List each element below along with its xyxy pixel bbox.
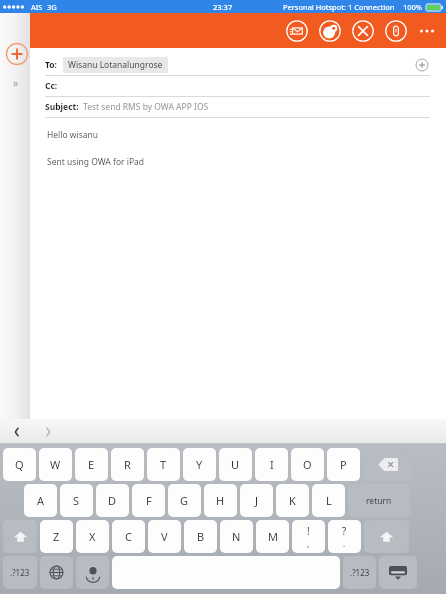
button[interactable]: Discard xyxy=(352,20,374,42)
staticText: D xyxy=(108,493,117,508)
staticText: F xyxy=(146,493,152,508)
button[interactable]: M xyxy=(256,520,289,553)
staticText: L xyxy=(326,493,332,508)
staticText: 3G xyxy=(47,2,57,12)
button[interactable]: G xyxy=(168,484,201,517)
staticText: P xyxy=(340,457,347,472)
staticText: E xyxy=(88,457,95,472)
staticText: Y xyxy=(196,457,203,472)
button[interactable]: A xyxy=(24,484,57,517)
button[interactable]: Q xyxy=(3,448,36,481)
button[interactable]: W xyxy=(39,448,72,481)
staticText: Personal Hotspot: 1 Connection xyxy=(283,2,395,12)
staticText: W xyxy=(50,457,61,472)
button[interactable]: I xyxy=(255,448,288,481)
staticText: ! xyxy=(307,524,310,538)
button[interactable]: T xyxy=(147,448,180,481)
staticText: I xyxy=(270,457,274,472)
staticText: Hello wisanu xyxy=(47,129,99,141)
button[interactable]: C xyxy=(112,520,145,553)
button[interactable]: New message xyxy=(5,42,29,66)
staticText: K xyxy=(289,493,296,508)
button[interactable]: O xyxy=(291,448,324,481)
staticText: . xyxy=(343,538,346,549)
button[interactable]: Permissions xyxy=(319,20,341,42)
staticText: M xyxy=(268,529,278,544)
staticText: Subject: xyxy=(45,101,79,113)
staticText: Z xyxy=(53,529,60,544)
staticText: 23:37 xyxy=(213,2,233,12)
staticText: O xyxy=(303,457,312,472)
button[interactable]: Send xyxy=(286,20,308,42)
staticText: return xyxy=(366,495,392,507)
staticText: .?123 xyxy=(10,567,30,578)
staticText: .?123 xyxy=(350,567,370,578)
button[interactable]: Space xyxy=(112,556,340,589)
staticText: Test send RMS by OWA APP IOS xyxy=(83,101,209,113)
staticText: S xyxy=(73,493,80,508)
button[interactable]: Hide keyboard xyxy=(379,556,417,589)
button[interactable]: More options xyxy=(416,19,438,43)
button[interactable]: V xyxy=(148,520,181,553)
staticText: C xyxy=(125,529,132,544)
button[interactable]: B xyxy=(184,520,217,553)
button[interactable]: ! xyxy=(292,520,325,553)
button[interactable]: ? xyxy=(328,520,361,553)
button[interactable]: J xyxy=(240,484,273,517)
button[interactable]: R xyxy=(111,448,144,481)
staticText: 100% xyxy=(403,2,423,12)
button[interactable]: P xyxy=(327,448,360,481)
button[interactable]: Previous field xyxy=(6,421,28,443)
button[interactable]: Expand navigation xyxy=(8,75,24,91)
button[interactable]: .?123 xyxy=(3,556,37,589)
staticText: Q xyxy=(15,457,24,472)
button[interactable]: X xyxy=(76,520,109,553)
button[interactable]: Z xyxy=(40,520,73,553)
button[interactable]: K xyxy=(276,484,309,517)
button[interactable]: U xyxy=(219,448,252,481)
button[interactable]: F xyxy=(132,484,165,517)
staticText: U xyxy=(231,457,240,472)
button[interactable]: return xyxy=(348,484,410,517)
staticText: R xyxy=(124,457,131,472)
button[interactable]: N xyxy=(220,520,253,553)
button[interactable]: Backspace xyxy=(363,448,412,481)
staticText: G xyxy=(180,493,189,508)
staticText: » xyxy=(13,76,19,90)
staticText: N xyxy=(232,529,241,544)
staticText: AIS xyxy=(31,2,43,12)
button[interactable]: Add recipient xyxy=(414,57,430,73)
button[interactable]: Subject: xyxy=(30,97,446,117)
button[interactable]: Y xyxy=(183,448,216,481)
staticText: X xyxy=(89,529,96,544)
staticText: ? xyxy=(342,524,347,538)
button[interactable]: To: xyxy=(30,55,446,75)
button[interactable]: Shift xyxy=(3,520,37,553)
staticText: T xyxy=(160,457,167,472)
button[interactable]: Change keyboard xyxy=(40,556,73,589)
button[interactable]: Hello wisanu xyxy=(30,129,446,168)
staticText: , xyxy=(307,538,310,549)
staticText: H xyxy=(216,493,225,508)
staticText: Wisanu Lotanalungrose xyxy=(68,59,163,71)
staticText: Cc: xyxy=(45,80,58,92)
button[interactable]: .?123 xyxy=(343,556,376,589)
staticText: J xyxy=(255,493,259,508)
button[interactable]: Dictation xyxy=(76,556,109,589)
staticText: To: xyxy=(45,59,58,71)
button[interactable]: Attach xyxy=(385,20,407,42)
staticText: A xyxy=(37,493,45,508)
button[interactable]: L xyxy=(312,484,345,517)
staticText: V xyxy=(161,529,168,544)
staticText: Sent using OWA for iPad xyxy=(47,156,145,168)
button[interactable]: Shift xyxy=(364,520,409,553)
button[interactable]: S xyxy=(60,484,93,517)
button[interactable]: H xyxy=(204,484,237,517)
button[interactable]: E xyxy=(75,448,108,481)
button[interactable]: Cc: xyxy=(30,76,446,96)
staticText: B xyxy=(197,529,205,544)
button[interactable]: Next field xyxy=(37,421,59,443)
button[interactable]: D xyxy=(96,484,129,517)
